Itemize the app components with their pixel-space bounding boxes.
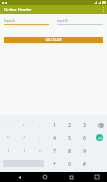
staticText: 3 xyxy=(83,122,86,128)
button[interactable]: 1 xyxy=(47,118,62,131)
button[interactable]: 9 xyxy=(77,144,92,157)
button[interactable]: Back xyxy=(13,172,25,182)
staticText: 8 xyxy=(68,148,71,154)
staticText: + xyxy=(23,123,25,127)
staticText: - xyxy=(7,123,9,127)
button[interactable]: Input A xyxy=(4,17,49,25)
staticText: = xyxy=(39,149,41,153)
button[interactable]: Hide keyboard xyxy=(91,172,103,182)
staticText: 6 xyxy=(83,135,86,141)
button[interactable]: = xyxy=(32,144,47,157)
button[interactable]: 8 xyxy=(62,144,77,157)
button[interactable]: # xyxy=(77,157,92,170)
button[interactable]: Enter xyxy=(96,134,103,141)
button[interactable]: CALCULATE xyxy=(4,37,103,43)
button[interactable]: 7 xyxy=(47,144,62,157)
staticText: 2 xyxy=(68,122,71,128)
button[interactable]: 2 xyxy=(62,118,77,131)
staticText: 0 xyxy=(68,161,71,167)
staticText: ( xyxy=(8,149,9,153)
staticText: * xyxy=(7,136,9,140)
staticText: CALCULATE xyxy=(45,38,62,42)
button[interactable]: 4 xyxy=(47,131,62,144)
button[interactable]: + xyxy=(16,118,32,131)
staticText: Input B xyxy=(57,19,68,23)
button[interactable]: 3 xyxy=(77,118,92,131)
staticText: * xyxy=(53,161,56,167)
button[interactable]: ( xyxy=(0,144,16,157)
staticText: # xyxy=(83,161,86,167)
staticText: 1 xyxy=(53,122,56,128)
button[interactable]: * xyxy=(47,157,62,170)
button[interactable]: Input B xyxy=(57,17,103,25)
staticText: / xyxy=(23,136,25,140)
staticText: Online Header xyxy=(4,7,32,12)
staticText: 9 xyxy=(83,148,86,154)
button[interactable]: Home xyxy=(39,172,51,182)
staticText: , xyxy=(39,123,40,127)
staticText: ) xyxy=(24,149,25,153)
button[interactable]: ) xyxy=(16,144,32,157)
button[interactable]: * xyxy=(0,131,16,144)
button[interactable]: / xyxy=(16,131,32,144)
button[interactable]: 6 xyxy=(77,131,92,144)
button[interactable]: 5 xyxy=(62,131,77,144)
button[interactable]: Recent apps xyxy=(65,172,77,182)
staticText: 5 xyxy=(68,135,71,141)
staticText: Input A xyxy=(4,19,15,23)
button[interactable]: 0 xyxy=(62,157,77,170)
staticText: 7 xyxy=(53,148,56,154)
staticText: 4 xyxy=(53,135,56,141)
button[interactable]: Backspace xyxy=(95,120,105,130)
staticText: ; xyxy=(39,136,40,140)
button[interactable]: More options xyxy=(99,5,107,14)
